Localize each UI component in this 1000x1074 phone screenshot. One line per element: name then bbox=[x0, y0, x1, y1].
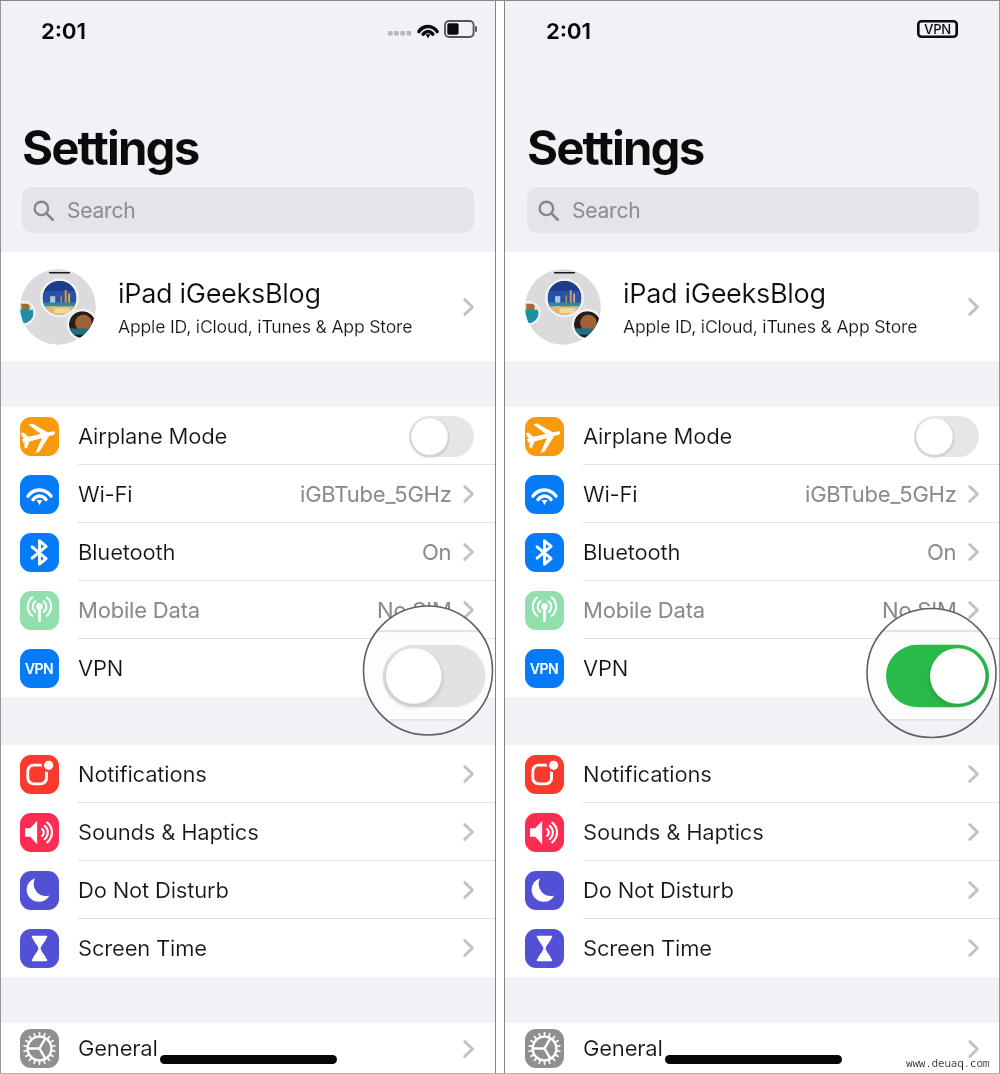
staticText: iPad iGeeksBlog bbox=[118, 277, 321, 310]
staticText: On bbox=[422, 539, 452, 566]
staticText: Notifications bbox=[583, 761, 712, 788]
button[interactable]: VPN bbox=[505, 639, 1000, 697]
staticText: Sounds & Haptics bbox=[583, 819, 764, 846]
button[interactable]: Notifications bbox=[0, 745, 495, 803]
staticText: Screen Time bbox=[583, 935, 712, 962]
button[interactable]: General bbox=[505, 1023, 1000, 1074]
staticText: Bluetooth bbox=[78, 539, 176, 566]
staticText: www.deuaq.com bbox=[906, 1055, 990, 1070]
button[interactable]: Bluetooth bbox=[0, 523, 495, 581]
button[interactable]: Airplane Mode bbox=[505, 407, 1000, 465]
staticText: Search bbox=[572, 198, 641, 223]
button[interactable]: Airplane Mode switch bbox=[409, 416, 474, 457]
staticText: VPN bbox=[583, 655, 629, 682]
staticText: VPN bbox=[530, 660, 559, 677]
button[interactable]: iPad iGeeksBlog bbox=[0, 252, 495, 361]
staticText: VPN bbox=[78, 655, 124, 682]
staticText: Sounds & Haptics bbox=[78, 819, 259, 846]
button[interactable]: Mobile Data bbox=[0, 581, 495, 639]
staticText: Airplane Mode bbox=[78, 423, 228, 450]
button[interactable]: Screen Time bbox=[0, 919, 495, 977]
button[interactable]: Airplane Mode bbox=[0, 407, 495, 465]
button[interactable]: VPN switch bbox=[409, 648, 474, 689]
staticText: Search bbox=[67, 198, 136, 223]
staticText: Settings bbox=[22, 119, 199, 176]
staticText: Apple ID, iCloud, iTunes & App Store bbox=[623, 316, 918, 337]
button[interactable]: VPN switch bbox=[914, 648, 979, 689]
button[interactable]: VPN bbox=[0, 639, 495, 697]
staticText: iGBTube_5GHz bbox=[805, 481, 957, 508]
staticText: VPN bbox=[25, 660, 54, 677]
staticText: Screen Time bbox=[78, 935, 207, 962]
staticText: Wi-Fi bbox=[78, 481, 133, 508]
button[interactable]: Search bbox=[527, 187, 979, 233]
staticText: Apple ID, iCloud, iTunes & App Store bbox=[118, 316, 413, 337]
staticText: 2:01 bbox=[546, 18, 591, 45]
staticText: Do Not Disturb bbox=[583, 877, 734, 904]
staticText: Do Not Disturb bbox=[78, 877, 229, 904]
button[interactable]: iPad iGeeksBlog bbox=[505, 252, 1000, 361]
button[interactable]: Wi-Fi bbox=[505, 465, 1000, 523]
staticText: General bbox=[78, 1035, 158, 1062]
staticText: Notifications bbox=[78, 761, 207, 788]
staticText: No SIM bbox=[882, 597, 957, 624]
button[interactable]: Notifications bbox=[505, 745, 1000, 803]
staticText: Settings bbox=[527, 119, 704, 176]
button[interactable]: Screen Time bbox=[505, 919, 1000, 977]
staticText: No SIM bbox=[377, 597, 452, 624]
staticText: 2:01 bbox=[41, 18, 86, 45]
staticText: On bbox=[927, 539, 957, 566]
staticText: Airplane Mode bbox=[583, 423, 733, 450]
button[interactable]: Do Not Disturb bbox=[0, 861, 495, 919]
staticText: Mobile Data bbox=[78, 597, 200, 624]
button[interactable]: General bbox=[0, 1023, 495, 1074]
button[interactable]: Search bbox=[22, 187, 474, 233]
button[interactable]: Wi-Fi bbox=[0, 465, 495, 523]
staticText: VPN bbox=[924, 21, 951, 37]
button[interactable]: Sounds & Haptics bbox=[505, 803, 1000, 861]
button[interactable]: Airplane Mode switch bbox=[914, 416, 979, 457]
staticText: iPad iGeeksBlog bbox=[623, 277, 826, 310]
button[interactable]: Mobile Data bbox=[505, 581, 1000, 639]
staticText: General bbox=[583, 1035, 663, 1062]
staticText: Wi-Fi bbox=[583, 481, 638, 508]
staticText: Bluetooth bbox=[583, 539, 681, 566]
button[interactable]: Do Not Disturb bbox=[505, 861, 1000, 919]
staticText: Mobile Data bbox=[583, 597, 705, 624]
button[interactable]: Bluetooth bbox=[505, 523, 1000, 581]
button[interactable]: Sounds & Haptics bbox=[0, 803, 495, 861]
staticText: iGBTube_5GHz bbox=[300, 481, 452, 508]
